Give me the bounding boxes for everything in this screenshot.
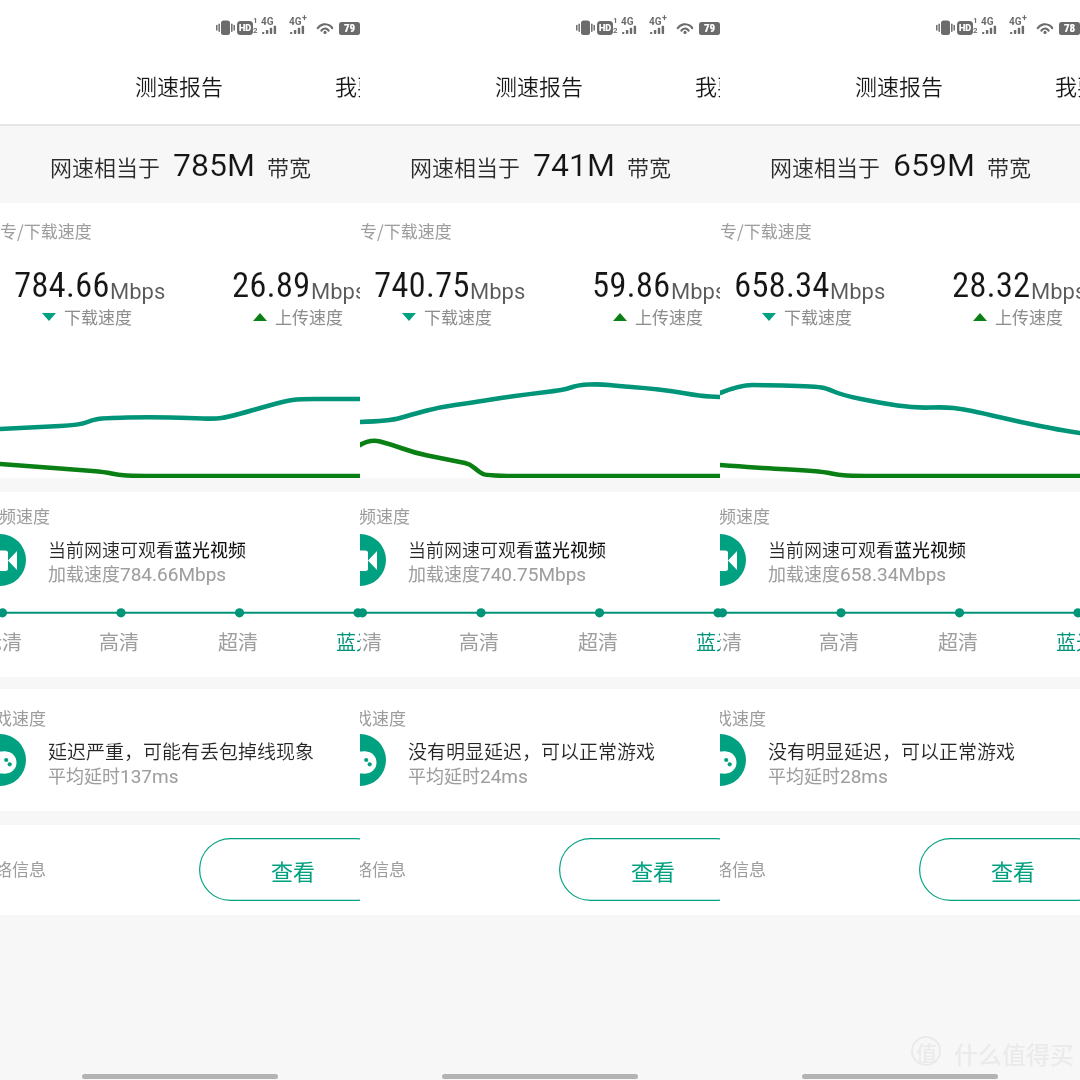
staticText: 加载速度: [48, 560, 120, 586]
other: Wi-Fi: [317, 21, 333, 35]
other: 视频速度: [360, 534, 386, 586]
other: 视频速度: [0, 534, 26, 586]
staticText: 视频速度: [360, 503, 410, 528]
staticText: 下载速度: [64, 304, 132, 329]
staticText: 视频速度: [0, 503, 50, 528]
staticText: 78: [1064, 22, 1076, 35]
staticText: 视频速度: [720, 503, 770, 528]
staticText: 标清: [360, 627, 382, 656]
staticText: 专/下载速度: [360, 218, 452, 243]
staticText: Mbps: [1031, 279, 1080, 305]
staticText: 4G: [289, 16, 302, 28]
staticText: 上传速度: [995, 304, 1063, 329]
staticText: 784.66Mbps: [120, 563, 227, 585]
staticText: 游戏速度: [0, 705, 46, 730]
button[interactable]: 我要测速: [1055, 69, 1080, 101]
other: 游戏速度: [720, 734, 746, 786]
staticText: 蓝光视频: [894, 536, 966, 562]
other: 视频速度: [720, 534, 746, 586]
staticText: 740.75: [374, 265, 470, 306]
staticText: +: [1022, 13, 1027, 24]
other: 游戏速度: [0, 734, 26, 786]
staticText: 当前网速可观看: [48, 536, 174, 562]
staticText: 24ms: [480, 765, 528, 787]
staticText: Mbps: [311, 279, 360, 305]
staticText: 我要测速: [1055, 69, 1080, 101]
staticText: 785M: [173, 146, 255, 184]
staticText: HD: [959, 23, 972, 34]
staticText: 网速相当于: [410, 150, 521, 182]
staticText: 蓝光: [336, 627, 360, 656]
staticText: 2: [973, 26, 978, 35]
staticText: 测速报告: [135, 69, 224, 101]
button[interactable]: 我要测速: [695, 69, 720, 101]
staticText: 59.86: [592, 265, 671, 306]
staticText: 高清: [99, 627, 139, 656]
staticText: HD: [599, 23, 612, 34]
staticText: 加载速度: [768, 560, 840, 586]
staticText: 加载速度: [408, 560, 480, 586]
staticText: 4G: [981, 16, 994, 28]
staticText: 测速报告: [855, 69, 944, 101]
staticText: Mbps: [671, 279, 720, 305]
staticText: 值: [916, 1037, 937, 1067]
staticText: 1: [613, 16, 618, 25]
staticText: 带宽: [267, 150, 312, 182]
staticText: +: [302, 13, 307, 24]
staticText: 高清: [459, 627, 499, 656]
staticText: 标清: [720, 627, 742, 656]
staticText: 4G: [621, 16, 634, 28]
other: 游戏速度: [360, 734, 386, 786]
staticText: 查看: [631, 854, 676, 886]
staticText: 1: [973, 16, 978, 25]
staticText: 游戏速度: [360, 705, 406, 730]
button[interactable]: 我要测速: [335, 69, 360, 101]
staticText: 4G: [649, 16, 662, 28]
staticText: Mbps: [470, 279, 526, 305]
button[interactable]: 查看: [919, 838, 1080, 901]
staticText: 26.89: [232, 265, 311, 306]
staticText: 658.34Mbps: [840, 563, 947, 585]
staticText: 79: [704, 22, 716, 35]
staticText: 741M: [533, 146, 615, 184]
staticText: 网络信息: [360, 856, 406, 881]
button[interactable]: 测速报告: [135, 69, 224, 101]
staticText: 网络信息: [720, 856, 766, 881]
staticText: 2: [253, 26, 258, 35]
staticText: 游戏速度: [720, 705, 766, 730]
staticText: 当前网速可观看: [768, 536, 894, 562]
staticText: 蓝光: [1056, 627, 1080, 656]
staticText: +: [662, 13, 667, 24]
staticText: 28.32: [952, 265, 1031, 306]
staticText: 网络信息: [0, 856, 46, 881]
staticText: 超清: [938, 627, 978, 656]
staticText: 网速相当于: [50, 150, 161, 182]
staticText: 超清: [578, 627, 618, 656]
other: Wi-Fi: [1037, 21, 1053, 35]
staticText: 什么值得买: [954, 1036, 1074, 1071]
staticText: 1: [253, 16, 258, 25]
staticText: 蓝光视频: [534, 536, 606, 562]
staticText: 2: [613, 26, 618, 35]
staticText: Mbps: [830, 279, 886, 305]
staticText: 28ms: [840, 765, 888, 787]
staticText: 高清: [819, 627, 859, 656]
staticText: 标清: [0, 627, 22, 656]
staticText: 没有明显延迟，可以正常游戏: [768, 737, 1016, 765]
staticText: 上传速度: [635, 304, 703, 329]
other: Vibrate: [936, 20, 954, 36]
staticText: HD: [239, 23, 252, 34]
button[interactable]: 查看: [559, 838, 720, 901]
staticText: 带宽: [987, 150, 1032, 182]
button[interactable]: 查看: [199, 838, 360, 901]
other: Vibrate: [576, 20, 594, 36]
button[interactable]: 测速报告: [495, 69, 584, 101]
button[interactable]: 测速报告: [855, 69, 944, 101]
staticText: 平均延时: [408, 762, 480, 788]
staticText: 蓝光视频: [174, 536, 246, 562]
staticText: 平均延时: [48, 762, 120, 788]
staticText: 没有明显延迟，可以正常游戏: [408, 737, 656, 765]
staticText: 当前网速可观看: [408, 536, 534, 562]
staticText: Mbps: [110, 279, 166, 305]
staticText: 专/下载速度: [720, 218, 812, 243]
